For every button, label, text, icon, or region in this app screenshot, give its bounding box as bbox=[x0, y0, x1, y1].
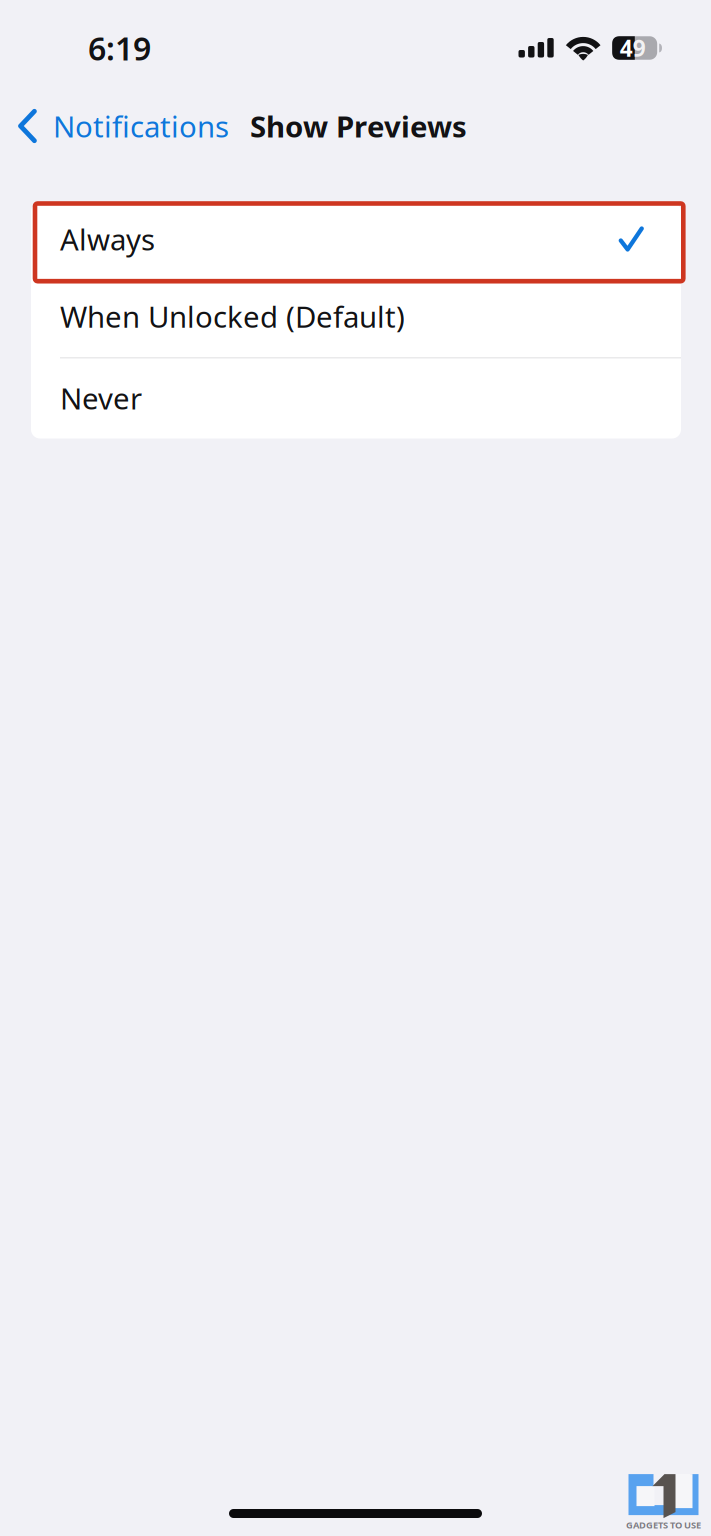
staticText: GADGETS TO USE bbox=[626, 1519, 701, 1531]
staticText: 9 bbox=[633, 33, 646, 63]
staticText: Never bbox=[60, 378, 142, 417]
staticText: When Unlocked (Default) bbox=[60, 297, 405, 336]
staticText: 4 bbox=[620, 33, 633, 63]
button[interactable]: Never bbox=[31, 358, 681, 438]
staticText: Notifications bbox=[53, 106, 229, 145]
staticText: Show Previews bbox=[250, 106, 467, 145]
button[interactable]: Notifications bbox=[0, 96, 237, 156]
button[interactable]: When Unlocked (Default) bbox=[31, 281, 681, 358]
button[interactable]: Always bbox=[31, 202, 681, 281]
staticText: Always bbox=[60, 219, 155, 258]
staticText: 6:19 bbox=[88, 27, 151, 69]
